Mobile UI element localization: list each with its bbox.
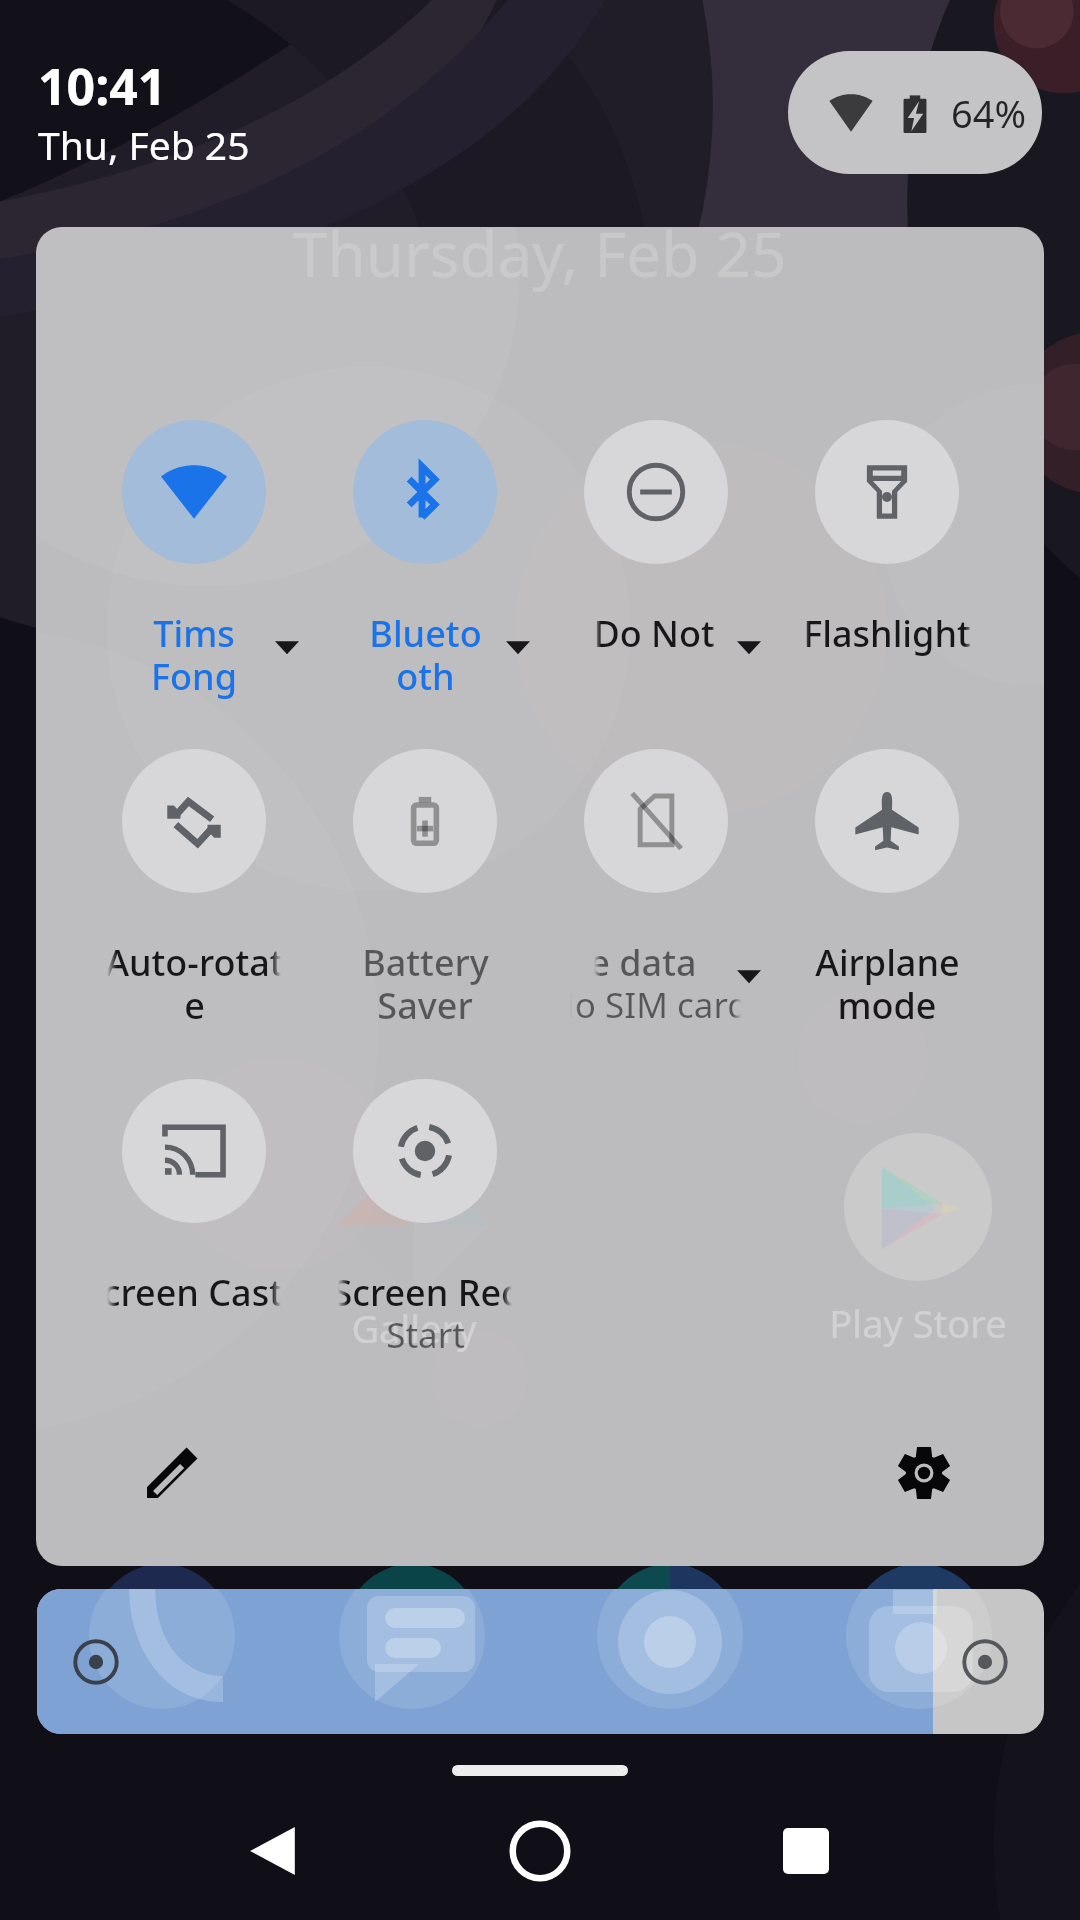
staticText: Fong	[151, 652, 237, 701]
button[interactable]: Brightness	[37, 1589, 1044, 1734]
staticText: 64%	[951, 87, 1027, 139]
staticText: Screen Cast	[83, 1268, 283, 1317]
staticText: Battery	[362, 938, 489, 987]
button[interactable]: Home	[492, 1803, 588, 1899]
button[interactable]: Edit tiles	[130, 1431, 214, 1515]
staticText: Thursday, Feb 25	[293, 227, 787, 295]
staticText: Saver	[377, 981, 473, 1030]
staticText: Screen Record	[332, 1268, 578, 1317]
button[interactable]: Back	[225, 1803, 321, 1899]
button[interactable]: Bluetooth	[310, 420, 540, 712]
staticText: No SIM card	[548, 981, 749, 1029]
button[interactable]: Wi-Fi, Tims Fong	[79, 420, 309, 712]
button[interactable]: Mobile data, No SIM card	[541, 749, 771, 1041]
staticText: oth	[396, 652, 455, 701]
button[interactable]: Screen Cast	[79, 1079, 309, 1371]
staticText: mode	[837, 981, 937, 1030]
button[interactable]: Airplane mode	[772, 749, 1002, 1041]
staticText: Mobile data	[492, 938, 697, 987]
staticText: Start	[386, 1311, 465, 1359]
staticText: 10:41	[38, 52, 167, 120]
button[interactable]: Recent apps	[758, 1803, 854, 1899]
staticText: Thu, Feb 25	[38, 118, 250, 171]
button[interactable]: Battery 64 percent	[788, 51, 1042, 174]
button[interactable]: Auto-rotate	[79, 749, 309, 1041]
button[interactable]: Settings	[882, 1431, 966, 1515]
staticText: Flashlight	[803, 609, 971, 658]
button[interactable]: Do Not Disturb	[541, 420, 771, 712]
staticText: Blueto	[369, 609, 482, 658]
staticText: Tims	[153, 609, 235, 658]
staticText: Play Store	[829, 1297, 1007, 1349]
staticText: Airplane	[815, 938, 960, 987]
staticText: Gallery	[351, 1302, 477, 1354]
button[interactable]: Battery Saver	[310, 749, 540, 1041]
staticText: Auto-rotat	[105, 938, 284, 987]
button[interactable]: Screen Record, Start	[310, 1079, 540, 1371]
staticText: e	[184, 981, 205, 1030]
button[interactable]: Flashlight	[772, 420, 1002, 712]
staticText: Do Not Disturb	[593, 609, 852, 658]
